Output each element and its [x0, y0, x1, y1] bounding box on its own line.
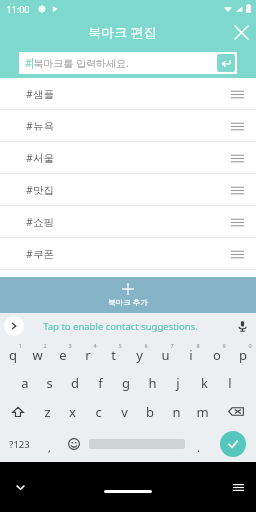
button[interactable]: #뉴욕 [0, 110, 256, 142]
button[interactable]: Submit [217, 54, 235, 72]
button[interactable]: Space [86, 426, 187, 462]
button[interactable]: . [187, 426, 210, 462]
button[interactable]: h [139, 368, 165, 397]
staticText: u [161, 346, 170, 364]
staticText: t [111, 346, 116, 364]
staticText: w [32, 346, 43, 364]
staticText: r [85, 346, 91, 364]
button[interactable]: n [163, 397, 189, 426]
button[interactable]: c [85, 397, 111, 426]
button[interactable]: f [87, 368, 113, 397]
button[interactable]: q [0, 339, 25, 368]
staticText: #쇼핑 [26, 215, 54, 229]
button[interactable]: # [19, 52, 237, 74]
staticText: y [136, 346, 143, 364]
staticText: l [228, 374, 232, 392]
staticText: z [44, 403, 51, 421]
button[interactable]: p [230, 339, 256, 368]
button[interactable]: #서울 [0, 142, 256, 174]
staticText: # [25, 56, 32, 70]
button[interactable]: d [62, 368, 87, 397]
button[interactable]: #샘플 [0, 78, 256, 110]
button[interactable]: a [12, 368, 37, 397]
staticText: 북마크 편집 [88, 23, 157, 41]
staticText: v [121, 403, 128, 421]
staticText: q [9, 346, 17, 364]
button[interactable]: w [25, 339, 50, 368]
button[interactable]: e [50, 339, 75, 368]
staticText: 4 [93, 342, 97, 349]
button[interactable]: ?123 [0, 426, 38, 462]
staticText: #쿠폰 [26, 247, 54, 261]
button[interactable]: Reorder [224, 113, 250, 139]
button[interactable]: z [35, 397, 60, 426]
button[interactable]: Reorder [224, 209, 250, 235]
staticText: m [196, 403, 209, 421]
button[interactable]: #맛집 [0, 174, 256, 206]
button[interactable]: #쇼핑 [0, 206, 256, 238]
staticText: 5 [118, 342, 122, 349]
button[interactable]: Hide keyboard [10, 477, 30, 497]
staticText: #서울 [26, 151, 54, 165]
staticText: 3 [68, 342, 72, 349]
button[interactable]: g [113, 368, 139, 397]
staticText: #뉴욕 [26, 119, 54, 133]
button[interactable]: Reorder [224, 81, 250, 107]
button[interactable]: Close [226, 17, 256, 47]
staticText: 2 [43, 342, 47, 349]
staticText: x [69, 403, 76, 421]
staticText: c [95, 403, 102, 421]
staticText: g [122, 374, 130, 392]
button[interactable]: Switch keyboard [228, 477, 248, 497]
button[interactable]: Enter [210, 426, 256, 462]
staticText: e [59, 346, 67, 364]
staticText: k [201, 374, 208, 392]
button[interactable]: Expand [4, 316, 24, 336]
button[interactable]: Reorder [224, 145, 250, 171]
button[interactable]: Reorder [224, 241, 250, 267]
button[interactable]: b [137, 397, 163, 426]
button[interactable]: j [165, 368, 191, 397]
staticText: o [213, 346, 221, 364]
staticText: 1 [18, 342, 22, 349]
button[interactable]: v [111, 397, 137, 426]
button[interactable]: x [60, 397, 85, 426]
button[interactable]: o [204, 339, 230, 368]
staticText: d [71, 374, 79, 392]
staticText: p [239, 346, 247, 364]
staticText: a [21, 374, 29, 392]
button[interactable]: , [38, 426, 61, 462]
staticText: f [98, 374, 103, 392]
button[interactable]: Backspace [215, 397, 256, 426]
button[interactable]: Reorder [224, 177, 250, 203]
button[interactable]: u [152, 339, 178, 368]
staticText: #샘플 [26, 87, 54, 101]
button[interactable]: s [37, 368, 62, 397]
staticText: . [197, 440, 200, 455]
staticText: #맛집 [26, 183, 54, 197]
staticText: b [146, 403, 154, 421]
staticText: 북마크를 입력하세요. [33, 56, 129, 70]
staticText: 8 [196, 342, 200, 349]
staticText: ?123 [9, 438, 30, 451]
button[interactable]: i [178, 339, 204, 368]
staticText: i [189, 346, 193, 364]
staticText: s [46, 374, 53, 392]
button[interactable]: k [191, 368, 217, 397]
button[interactable]: t [100, 339, 126, 368]
staticText: 6 [144, 342, 148, 349]
staticText: 북마크 추가 [108, 297, 148, 307]
staticText: j [176, 374, 180, 392]
button[interactable]: l [217, 368, 243, 397]
button[interactable]: m [189, 397, 215, 426]
staticText: 0 [248, 342, 252, 349]
button[interactable]: 북마크 추가 [0, 277, 256, 313]
staticText: , [48, 440, 51, 455]
button[interactable]: r [75, 339, 100, 368]
staticText: Tap to enable contact suggestions. [43, 320, 198, 333]
button[interactable]: Emoji [61, 426, 86, 462]
button[interactable]: Voice input [232, 316, 252, 336]
button[interactable]: Shift [0, 397, 35, 426]
button[interactable]: y [126, 339, 152, 368]
button[interactable]: #쿠폰 [0, 238, 256, 270]
